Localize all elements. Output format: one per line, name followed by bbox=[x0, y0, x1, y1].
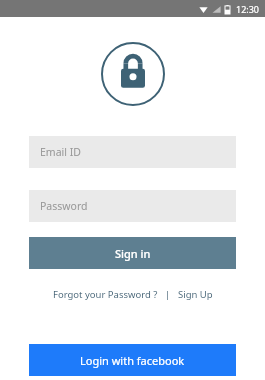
staticText: Login with facebook bbox=[80, 353, 185, 368]
button[interactable]: Forgot your Password ? bbox=[51, 285, 160, 304]
button[interactable]: Sign Up bbox=[176, 285, 215, 304]
staticText: 12:30 bbox=[235, 3, 259, 15]
button[interactable]: Sign in bbox=[29, 237, 236, 269]
staticText: Sign in bbox=[115, 246, 151, 261]
staticText: Email ID bbox=[40, 145, 81, 159]
button[interactable]: Email ID bbox=[29, 136, 236, 168]
staticText: | bbox=[160, 288, 176, 301]
staticText: Password bbox=[40, 199, 88, 213]
staticText: Sign Up bbox=[178, 288, 213, 301]
staticText: Forgot your Password ? bbox=[53, 288, 158, 301]
button[interactable]: Password bbox=[29, 190, 236, 222]
button[interactable]: Login with facebook bbox=[29, 344, 236, 376]
